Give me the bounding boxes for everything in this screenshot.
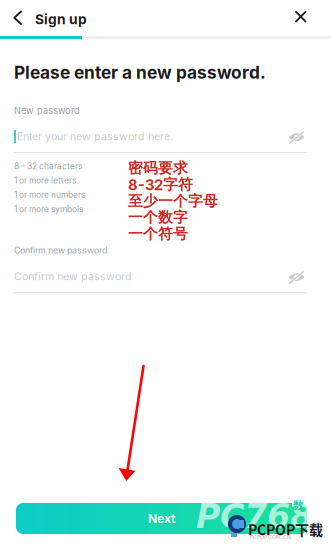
staticText: Confirm new password [14,245,107,256]
button[interactable]: Next [16,503,307,534]
staticText: 一个符号 [128,224,188,243]
staticText: PCPOP.COM.CN [250,534,291,540]
staticText: Enter your new password here. [17,130,173,143]
staticText: Next [148,511,175,526]
staticText: 密码要求 [128,159,188,177]
staticText: 1 or more numbers [14,190,85,200]
staticText: Confirm new password [14,270,132,283]
button[interactable]: Close [0,0,331,36]
staticText: 一个数字 [128,208,188,227]
staticText: PCPOP下载 [248,519,323,539]
staticText: Please enter a new password. [14,62,266,83]
staticText: 数 [293,497,304,512]
staticText: 至少一个字母 [128,192,218,210]
button[interactable]: Back [0,0,34,36]
staticText: 8-32字符 [128,175,193,194]
staticText: PC768 [196,497,313,536]
staticText: Sign up [35,11,87,28]
staticText: New password [14,105,80,116]
staticText: 1 or more letters [14,175,76,186]
staticText: 1 or more symbols [14,204,83,214]
staticText: 8 – 32 characters [14,161,82,171]
